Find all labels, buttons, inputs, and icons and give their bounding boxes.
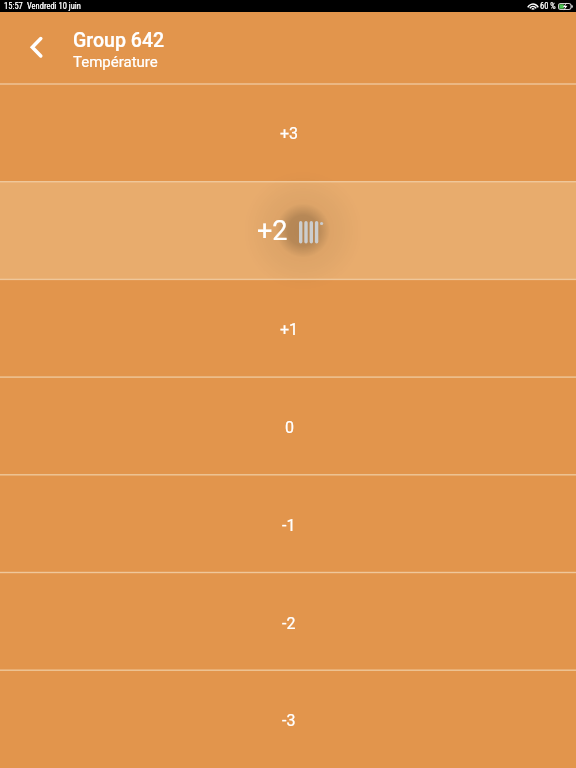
staticText: -3 [282,711,296,730]
button[interactable]: +3 [0,84,576,182]
button[interactable]: +2 [0,182,576,280]
button[interactable]: 0 [0,378,576,476]
button[interactable]: -3 [0,672,576,768]
staticText: Température [73,53,158,71]
button[interactable]: -1 [0,476,576,574]
staticText: 15:57 [4,1,23,11]
staticText: Vendredi 10 juin [27,1,81,11]
staticText: 60 % [540,1,556,11]
button[interactable]: +1 [0,280,576,378]
staticText: -1 [282,516,296,535]
button[interactable]: -2 [0,574,576,672]
staticText: -2 [282,614,296,633]
staticText: +2 [257,215,288,247]
staticText: 0 [285,418,294,437]
staticText: +3 [280,124,299,143]
staticText: Group 642 [73,29,165,52]
button[interactable]: Back [18,29,54,65]
staticText: +1 [280,320,299,339]
